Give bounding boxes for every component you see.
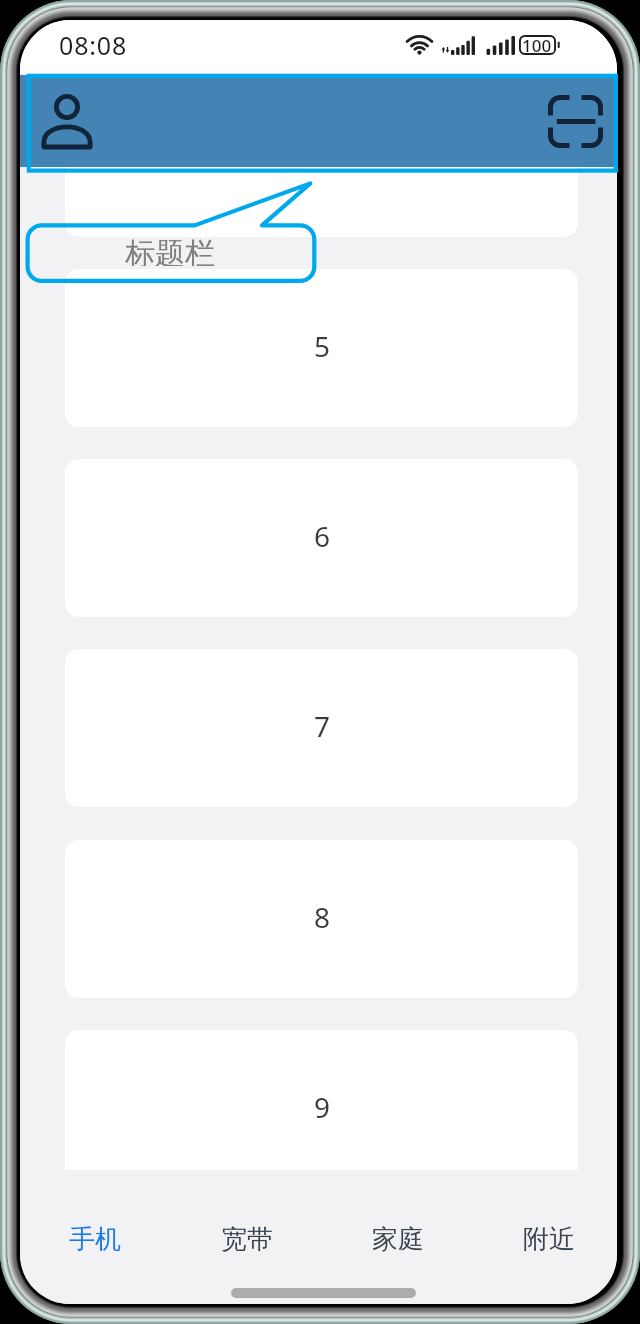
button[interactable]: 5	[65, 269, 578, 427]
staticText: 4	[314, 167, 331, 175]
button[interactable]: 4	[65, 167, 578, 237]
button[interactable]: 7	[65, 649, 578, 807]
staticText: 5	[314, 327, 331, 365]
button[interactable]: Profile	[33, 86, 101, 158]
button[interactable]: 家庭	[322, 1184, 471, 1294]
button[interactable]: 手机	[20, 1184, 169, 1294]
staticText: 08:08	[59, 28, 128, 62]
staticText: 标题栏	[125, 235, 215, 266]
button[interactable]: 6	[65, 459, 578, 617]
button[interactable]: Scan	[540, 87, 611, 156]
button[interactable]: 9	[65, 1030, 578, 1170]
button[interactable]: 8	[65, 840, 578, 998]
staticText: 家庭	[372, 1223, 424, 1256]
button[interactable]: 宽带	[171, 1184, 320, 1294]
staticText: 宽带	[221, 1223, 273, 1256]
button[interactable]: 附近	[473, 1184, 617, 1294]
staticText: 7	[314, 707, 331, 745]
staticText: 附近	[523, 1223, 575, 1256]
staticText: 6	[314, 517, 331, 555]
staticText: 8	[314, 898, 331, 936]
staticText: 100	[522, 34, 552, 54]
staticText: 9	[314, 1088, 331, 1126]
staticText: 手机	[69, 1223, 121, 1256]
